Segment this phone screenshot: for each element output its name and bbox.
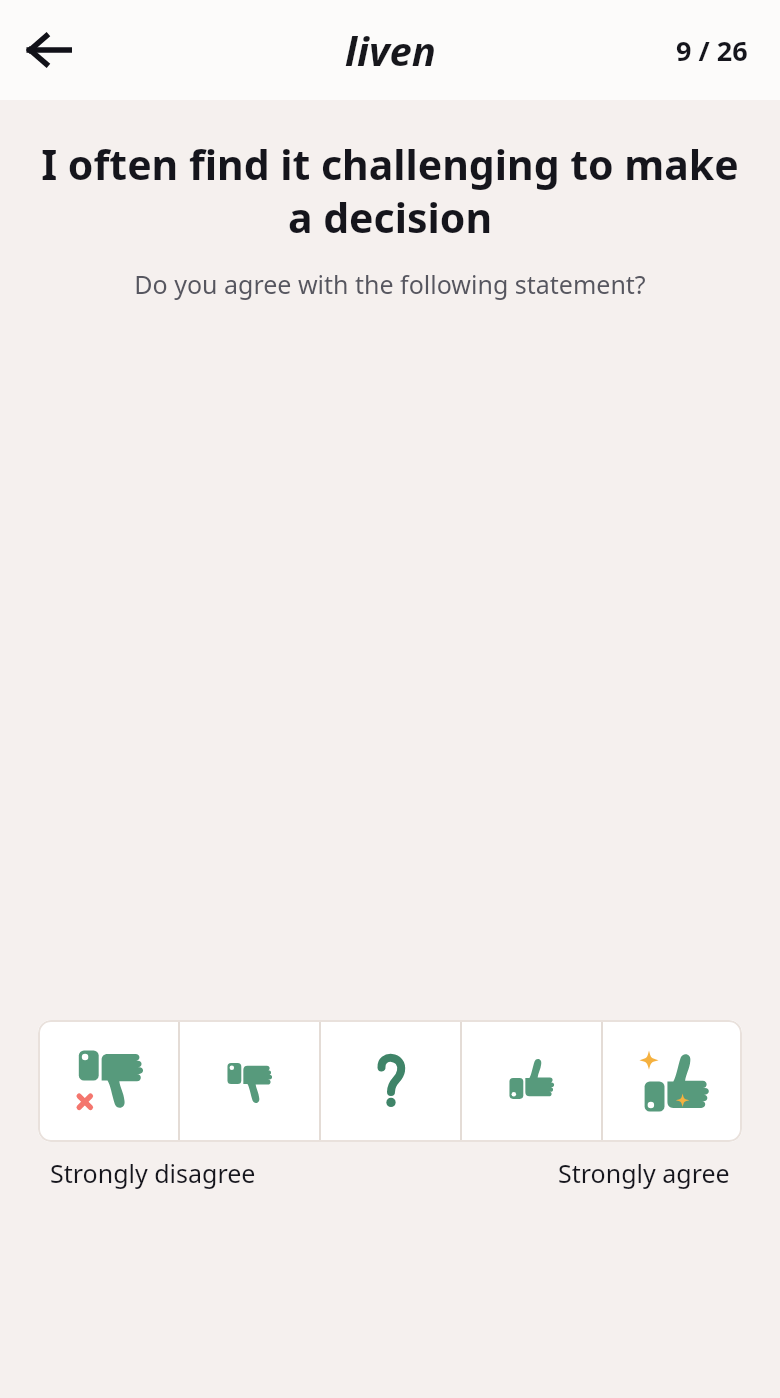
- staticText: Strongly disagree: [50, 1156, 256, 1190]
- staticText: 9 / 26: [676, 32, 748, 69]
- button[interactable]: Disagree: [180, 1020, 319, 1142]
- button[interactable]: Strongly agree: [603, 1020, 742, 1142]
- button[interactable]: Back: [12, 13, 86, 87]
- button[interactable]: Agree: [462, 1020, 601, 1142]
- button[interactable]: Strongly disagree: [38, 1020, 178, 1142]
- staticText: liven: [345, 23, 436, 77]
- staticText: Do you agree with the following statemen…: [20, 267, 760, 301]
- button[interactable]: Neutral: [321, 1020, 460, 1142]
- staticText: Strongly agree: [558, 1156, 730, 1190]
- staticText: I often find it challenging to make a de…: [24, 136, 756, 245]
